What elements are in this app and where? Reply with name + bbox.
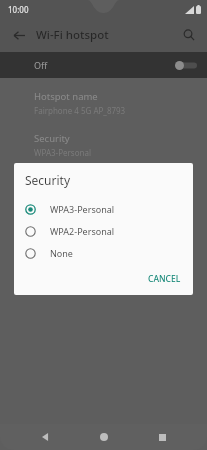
button[interactable]: CANCEL	[142, 269, 187, 289]
button[interactable]: WPA3-Personal	[14, 198, 193, 220]
button[interactable]: Home	[93, 426, 115, 448]
staticText: Off	[34, 59, 48, 71]
staticText: CANCEL	[148, 273, 181, 285]
staticText: 10:00	[8, 4, 29, 15]
staticText: WPA2-Personal	[50, 225, 115, 237]
button[interactable]: Navigate up	[7, 23, 31, 47]
button[interactable]: Hotspot password	[0, 172, 207, 189]
staticText: Security	[34, 132, 70, 145]
staticText: WPA3-Personal	[34, 147, 91, 158]
staticText: WPA3-Personal	[50, 203, 115, 215]
staticText: Fairphone 4 5G AP_8793	[34, 105, 126, 116]
button[interactable]: Back	[34, 426, 56, 448]
button[interactable]: WPA2-Personal	[14, 220, 193, 242]
button[interactable]: None	[14, 242, 193, 264]
button[interactable]: Hotspot name	[0, 88, 207, 118]
button[interactable]: Off	[0, 52, 207, 78]
staticText: Hotspot name	[34, 90, 98, 103]
button[interactable]: Search	[177, 23, 201, 47]
staticText: Hotspot password	[34, 174, 116, 187]
staticText: Security	[25, 172, 71, 188]
button[interactable]: Security	[0, 130, 207, 160]
button[interactable]: Recent apps	[151, 426, 173, 448]
staticText: None	[50, 247, 73, 259]
staticText: Wi-Fi hotspot	[36, 27, 109, 43]
